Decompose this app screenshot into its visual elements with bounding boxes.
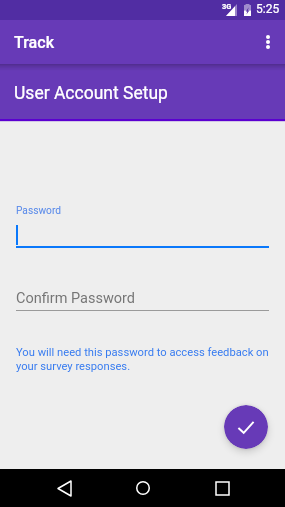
button[interactable]: Home <box>121 469 165 507</box>
staticText: Track <box>14 33 54 52</box>
button[interactable]: Recents <box>200 469 244 507</box>
button[interactable]: Confirm Password <box>16 286 269 310</box>
staticText: Password <box>16 205 61 217</box>
button[interactable]: Password field <box>16 220 269 248</box>
staticText: User Account Setup <box>14 83 168 104</box>
staticText: 3G <box>222 2 232 11</box>
button[interactable]: More options <box>249 20 285 64</box>
staticText: You will need this password to access fe… <box>16 346 272 372</box>
staticText: Confirm Password <box>16 290 136 307</box>
staticText: 5:25 <box>256 2 280 16</box>
button[interactable]: Save <box>224 405 268 449</box>
button[interactable]: Back <box>42 469 86 507</box>
